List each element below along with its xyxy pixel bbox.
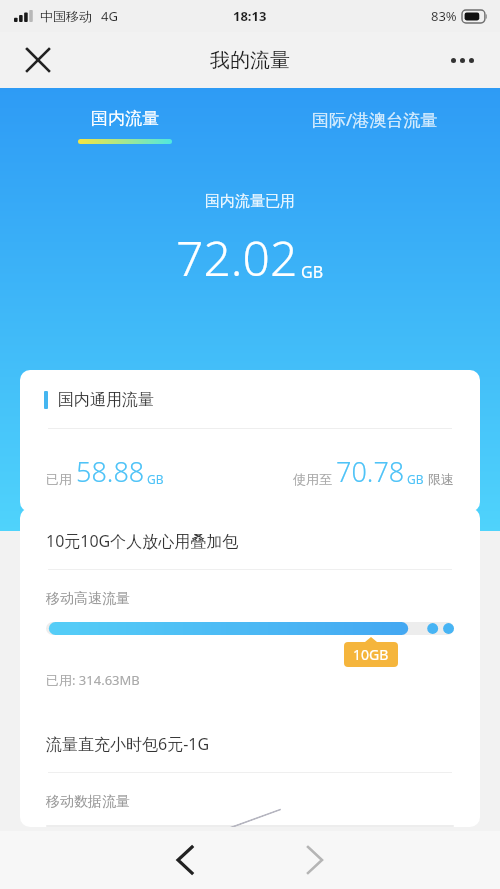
staticText: 流量直充小时包6元-1G [46,733,210,755]
button[interactable]: Forward [287,832,343,888]
staticText: 70.78 [336,453,405,490]
staticText: 移动高速流量 [46,590,130,608]
staticText: 限速 [428,471,454,487]
staticText: 18:13 [233,7,267,25]
staticText: 国内流量 [91,108,159,129]
staticText: 已用 [46,471,72,487]
staticText: 10GB [353,645,389,664]
button[interactable]: 国内通用流量 [20,370,480,512]
staticText: 移动数据流量 [46,793,130,811]
staticText: 10元10G个人放心用叠加包 [46,530,239,552]
staticText: 我的流量 [210,48,290,73]
button[interactable]: 国际/港澳台流量 [250,88,500,150]
staticText: GB [301,261,324,283]
button[interactable]: More options [438,36,486,84]
staticText: 58.88 [76,453,145,490]
staticText: 使用至 [293,471,332,487]
staticText: GB [147,471,164,487]
staticText: 72.02 [176,225,298,290]
staticText: 83% [431,7,457,25]
button[interactable]: 国内流量 [0,88,250,150]
staticText: 已用: 314.63MB [46,671,140,689]
staticText: 4G [101,7,118,25]
staticText: 国际/港澳台流量 [312,108,438,131]
staticText: 国内通用流量 [58,390,154,410]
button[interactable]: Back [157,832,213,888]
button[interactable]: Close [14,36,62,84]
staticText: 国内流量已用 [205,192,295,211]
staticText: 中国移动 [40,8,92,24]
staticText: GB [407,471,424,487]
